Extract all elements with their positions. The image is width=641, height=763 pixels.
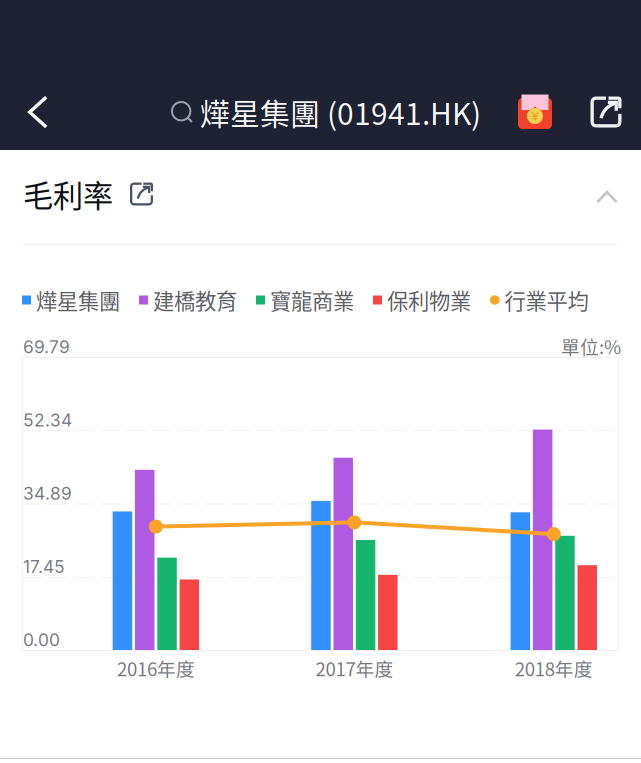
staticText: 行業平均 — [504, 285, 588, 315]
staticText: 保利物業 — [387, 285, 471, 315]
button[interactable]: Back — [8, 84, 68, 140]
staticText: 單位:% — [561, 332, 621, 359]
staticText: 建橋教育 — [153, 285, 237, 315]
staticText: 寶龍商業 — [270, 285, 354, 315]
staticText: 2016年度 — [117, 654, 195, 681]
button[interactable]: Share — [578, 84, 634, 140]
staticText: 17.45 — [23, 556, 65, 577]
staticText: 34.89 — [23, 483, 72, 504]
staticText: 2017年度 — [315, 654, 393, 681]
button[interactable]: Red packet reward — [507, 84, 563, 140]
staticText: 2018年度 — [515, 654, 593, 681]
staticText: 0.00 — [23, 629, 60, 650]
button[interactable]: 毛利率 — [23, 172, 223, 216]
button[interactable]: Collapse section — [580, 175, 634, 219]
staticText: 52.34 — [23, 410, 72, 431]
staticText: 毛利率 — [23, 172, 113, 216]
staticText: 燁星集團 (01941.HK) — [200, 90, 481, 134]
staticText: 燁星集團 — [36, 285, 120, 315]
staticText: 69.79 — [23, 336, 70, 357]
